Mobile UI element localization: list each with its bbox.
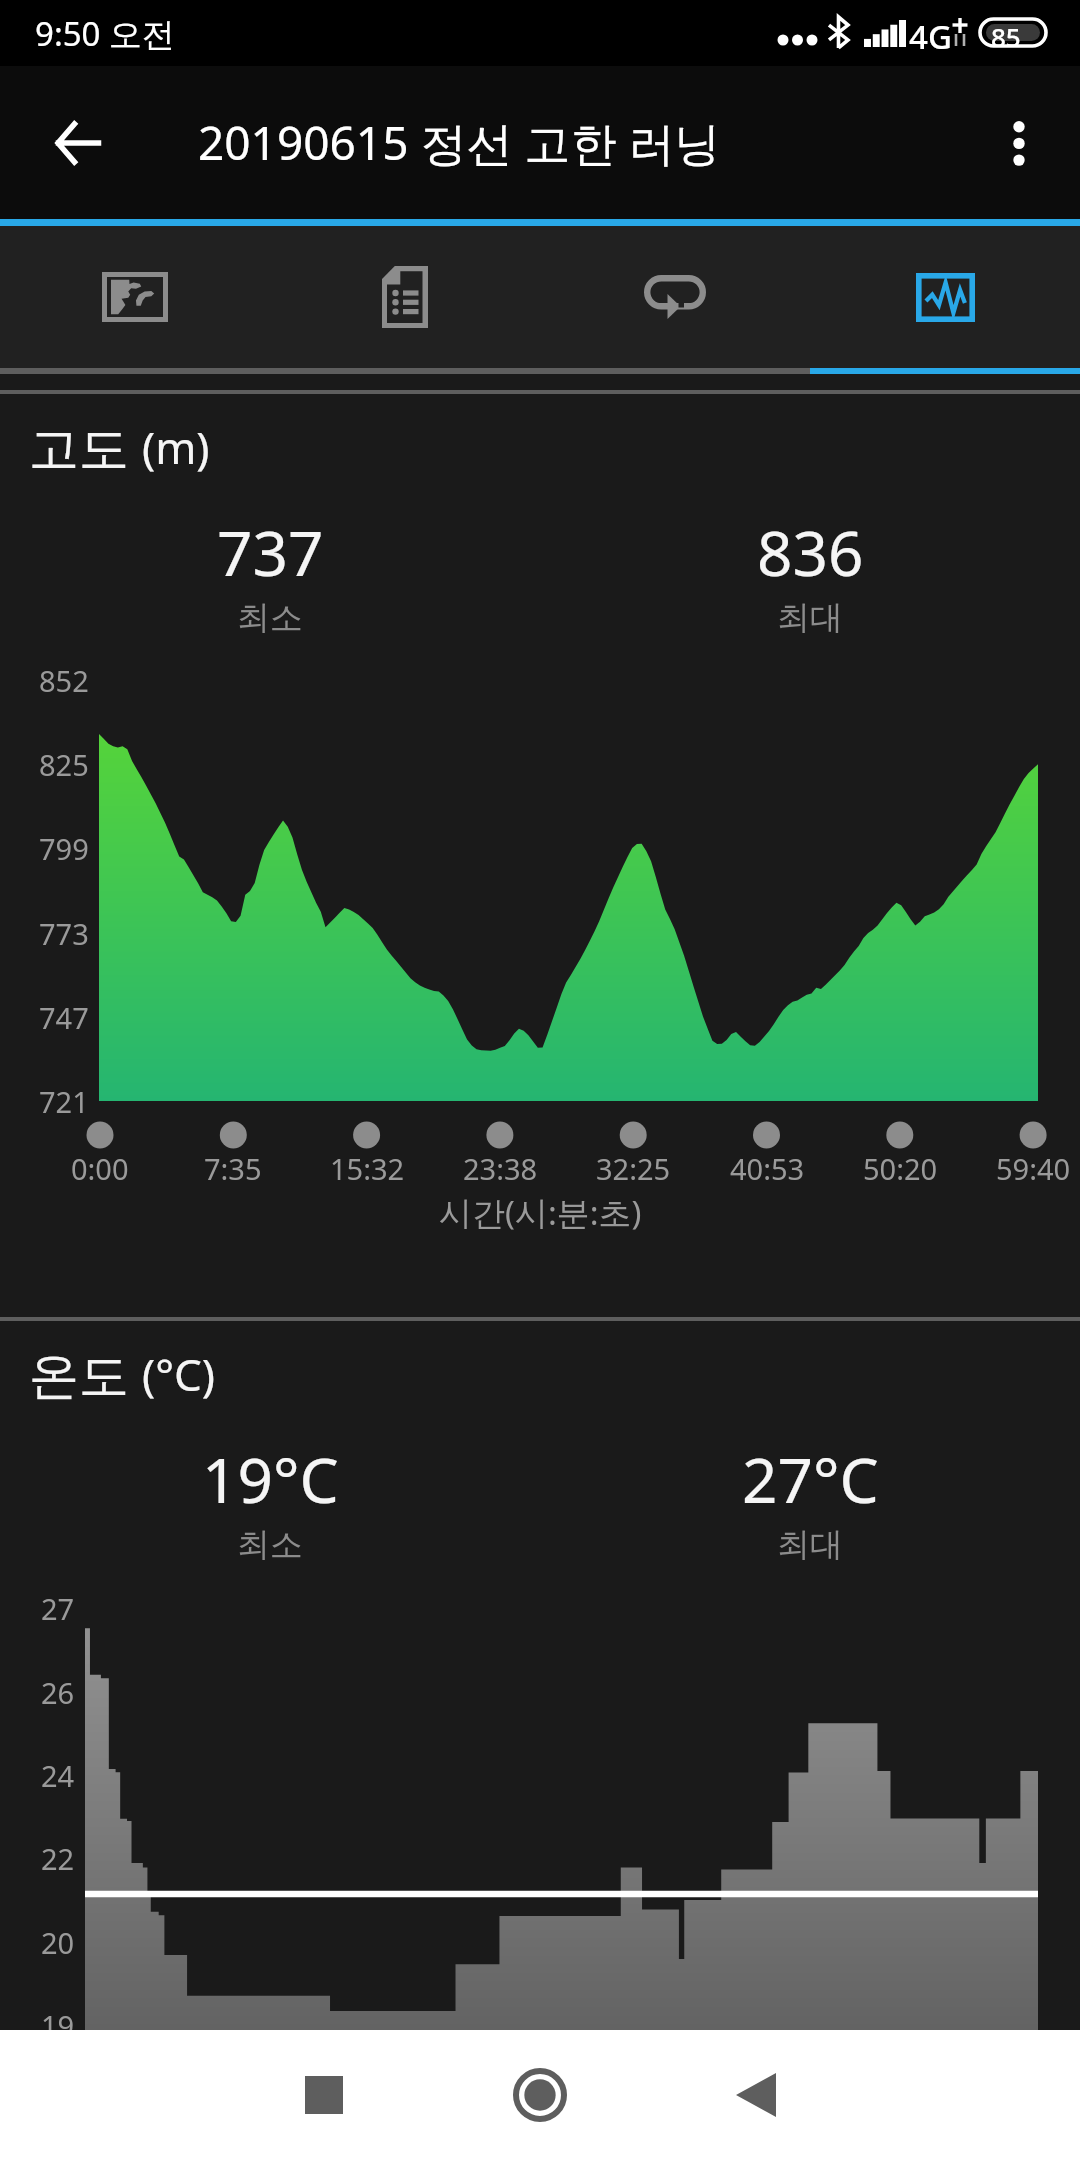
- staticText: 24: [41, 1756, 75, 1795]
- staticText: 825: [39, 745, 89, 784]
- staticText: 27°C: [742, 1437, 879, 1521]
- staticText: 27: [41, 1589, 75, 1628]
- button[interactable]: Charts: [810, 226, 1080, 368]
- staticText: 최소: [237, 1524, 303, 1566]
- staticText: 85: [991, 19, 1021, 54]
- staticText: 773: [39, 914, 89, 953]
- staticText: 고도: [29, 413, 142, 481]
- staticText: 7:35: [204, 1149, 262, 1188]
- staticText: 9:50 오전: [35, 11, 176, 56]
- button[interactable]: Details: [270, 226, 540, 368]
- staticText: 4G: [909, 14, 952, 59]
- staticText: 32:25: [596, 1149, 671, 1188]
- button[interactable]: More options: [969, 93, 1069, 193]
- staticText: 836: [757, 510, 864, 594]
- staticText: 온도: [29, 1340, 142, 1408]
- staticText: 799: [39, 829, 89, 868]
- staticText: 20: [41, 1923, 75, 1962]
- staticText: 737: [217, 510, 324, 594]
- staticText: 721: [39, 1082, 89, 1121]
- staticText: 최소: [237, 597, 303, 639]
- staticText: 22: [41, 1839, 75, 1878]
- button[interactable]: Home: [432, 2030, 648, 2160]
- staticText: 852: [39, 661, 89, 700]
- button[interactable]: Laps: [540, 226, 810, 368]
- staticText: 시간(시:분:초): [439, 1190, 642, 1235]
- staticText: 15:32: [330, 1149, 405, 1188]
- staticText: 19: [41, 2006, 75, 2045]
- staticText: 0:00: [71, 1149, 129, 1188]
- button[interactable]: Recents: [216, 2030, 432, 2160]
- staticText: 최대: [777, 1524, 843, 1566]
- staticText: 747: [39, 998, 89, 1037]
- button[interactable]: Back: [648, 2030, 864, 2160]
- staticText: 59:40: [996, 1149, 1071, 1188]
- staticText: 50:20: [863, 1149, 938, 1188]
- staticText: 40:53: [730, 1149, 805, 1188]
- staticText: (°C): [142, 1344, 216, 1404]
- staticText: 19°C: [202, 1437, 339, 1521]
- staticText: 26: [41, 1673, 75, 1712]
- staticText: 23:38: [463, 1149, 538, 1188]
- button[interactable]: Back: [28, 93, 128, 193]
- button[interactable]: Map: [0, 226, 270, 368]
- staticText: 20190615 정선 고한 러닝: [198, 111, 721, 174]
- staticText: 최대: [777, 597, 843, 639]
- staticText: (m): [142, 417, 210, 477]
